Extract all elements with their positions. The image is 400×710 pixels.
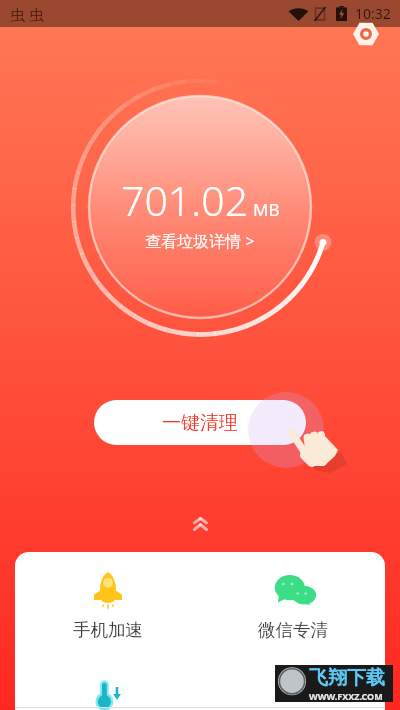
button[interactable]: 手机加速 — [15, 552, 200, 659]
staticText: 微信专清 — [258, 619, 328, 641]
button[interactable]: 一键清理 — [94, 400, 306, 445]
button[interactable]: Expand — [184, 511, 216, 537]
staticText: 701.02 — [121, 172, 249, 228]
staticText: MB — [253, 198, 280, 221]
button[interactable]: 查看垃圾详情 > — [139, 228, 261, 254]
button[interactable] — [15, 659, 200, 710]
staticText: 10:32 — [355, 4, 391, 23]
staticText: WWW.FXXZ.COM — [309, 690, 383, 702]
button[interactable]: Settings — [353, 21, 379, 47]
staticText: 手机加速 — [73, 619, 143, 641]
staticText: 一键清理 — [162, 411, 238, 435]
button[interactable]: 微信专清 — [200, 552, 385, 659]
staticText: 查看垃圾详情 > — [145, 230, 255, 252]
staticText: 飞翔下载 — [309, 666, 385, 690]
staticText: 虫 虫 — [10, 4, 44, 24]
button[interactable] — [200, 659, 385, 710]
